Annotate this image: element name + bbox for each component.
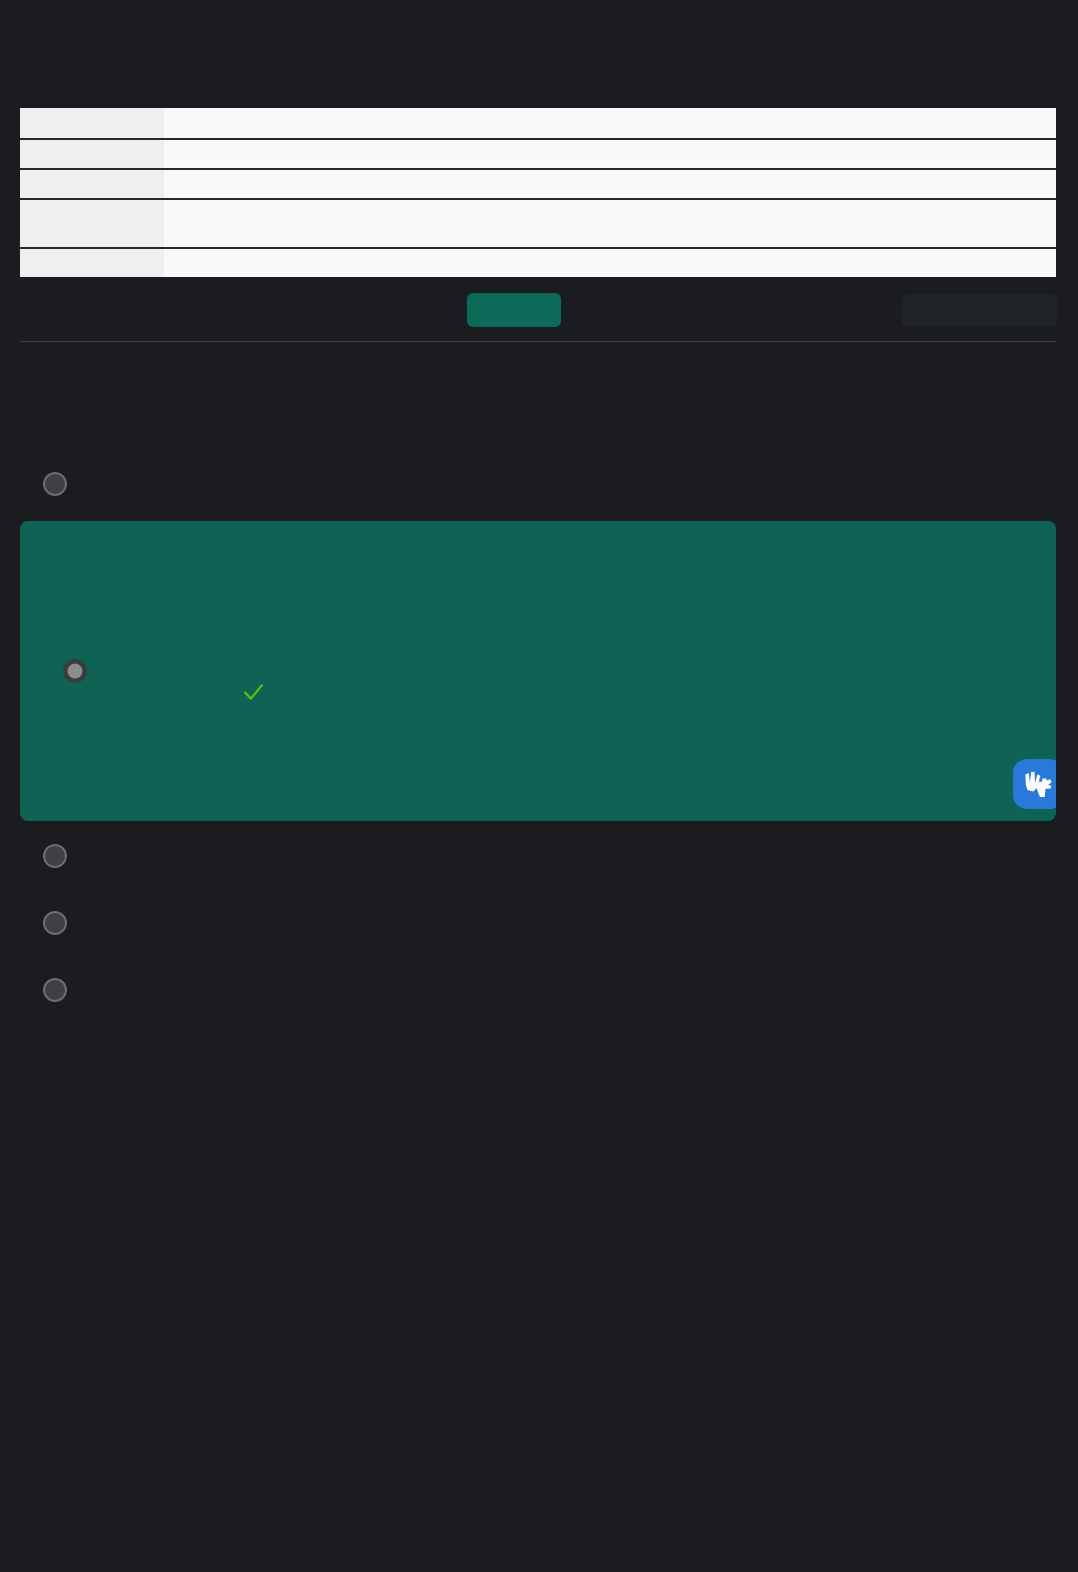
button[interactable]: Sign language accessibility bbox=[1013, 759, 1056, 809]
button[interactable]: Select option bbox=[43, 911, 67, 935]
button[interactable]: Select option bbox=[43, 472, 67, 496]
button[interactable]: Sign language accessibility bbox=[20, 521, 1056, 821]
button[interactable]: Select option bbox=[43, 844, 67, 868]
button[interactable]: Primary action bbox=[467, 293, 561, 327]
button[interactable]: Select option bbox=[43, 978, 67, 1002]
